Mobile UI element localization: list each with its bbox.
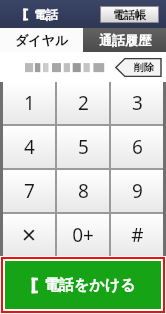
staticText: 削除 [134, 61, 154, 74]
staticText: 8 [78, 178, 89, 204]
button[interactable]: 削除 [115, 58, 163, 77]
staticText: 電話をかける [44, 276, 136, 295]
staticText: 2 [78, 90, 89, 116]
button[interactable]: ✕ [3, 214, 55, 256]
staticText: 通話履歴 [99, 32, 151, 48]
staticText: 5 [78, 134, 89, 160]
button[interactable]: # [111, 214, 163, 256]
button[interactable]: 7 [3, 170, 55, 212]
button[interactable]: 4 [3, 126, 55, 168]
button[interactable]: 2 [57, 82, 109, 124]
button[interactable]: 3 [111, 82, 163, 124]
staticText: # [131, 222, 144, 248]
button[interactable]: 電話をかける [5, 261, 161, 309]
staticText: ✕ [21, 224, 37, 246]
staticText: 3 [132, 90, 143, 116]
staticText: 電話帳 [113, 8, 146, 22]
staticText: 6 [132, 134, 143, 160]
staticText: 1 [24, 90, 35, 116]
staticText: 電話 [34, 7, 58, 22]
staticText: ダイヤル [15, 32, 69, 48]
staticText: 4 [24, 134, 35, 160]
button[interactable]: 6 [111, 126, 163, 168]
staticText: 7 [24, 178, 35, 204]
button[interactable]: 5 [57, 126, 109, 168]
button[interactable]: 9 [111, 170, 163, 212]
button[interactable]: 1 [3, 82, 55, 124]
button[interactable]: 8 [57, 170, 109, 212]
button[interactable]: 通話履歴 [83, 28, 166, 52]
staticText: 9 [132, 178, 143, 204]
button[interactable]: 電話帳 [100, 6, 159, 23]
button[interactable]: ダイヤル [0, 28, 83, 52]
staticText: 0+ [72, 222, 94, 248]
button[interactable]: 0+ [57, 214, 109, 256]
